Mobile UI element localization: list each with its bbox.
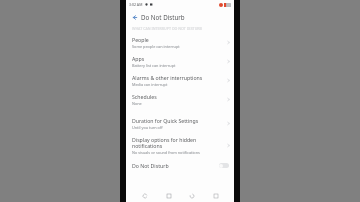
button[interactable]: Apps [126, 52, 234, 71]
button[interactable]: Recents [187, 191, 196, 200]
button[interactable]: Duration for Quick Settings [126, 114, 234, 133]
staticText: Schedules [132, 93, 157, 100]
staticText: Apps [132, 55, 145, 62]
staticText: Alarms & other interruptions [132, 74, 203, 81]
staticText: Duration for Quick Settings [132, 117, 199, 124]
button[interactable]: Alarms & other interruptions [126, 71, 234, 90]
staticText: Media can interrupt [132, 82, 168, 87]
staticText: No visuals or sound from notifications [132, 150, 200, 155]
button[interactable]: Schedules [126, 90, 234, 109]
staticText: 3:02 AM [129, 2, 143, 7]
staticText: Do Not Disturb [141, 13, 185, 21]
button[interactable]: Do Not Disturb [126, 158, 234, 173]
button[interactable]: Back [129, 12, 139, 22]
staticText: Some people can interrupt [132, 44, 180, 49]
button[interactable]: Back [140, 191, 149, 200]
staticText: Battery list can interrupt [132, 63, 176, 68]
staticText: Until you turn off [132, 125, 163, 130]
staticText: Do Not Disturb [132, 162, 219, 169]
staticText: Display options for hidden notifications [132, 136, 225, 149]
staticText: None [132, 101, 142, 106]
button[interactable]: People [126, 33, 234, 52]
button[interactable]: Menu [211, 191, 220, 200]
staticText: WHAT CAN INTERRUPT DO NOT DISTURB [132, 26, 202, 31]
button[interactable]: Display options for hidden notifications [126, 133, 234, 158]
staticText: People [132, 36, 149, 43]
button[interactable]: Home [164, 191, 173, 200]
